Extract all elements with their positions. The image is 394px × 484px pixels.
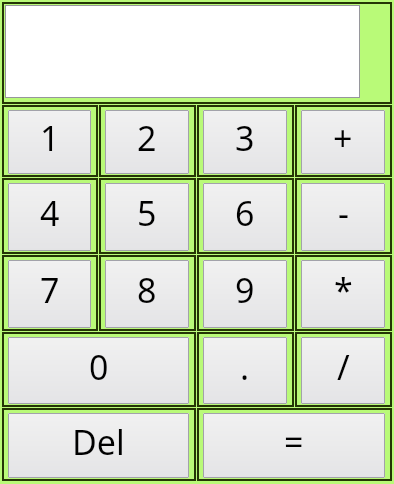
staticText: Del: [72, 419, 125, 465]
button[interactable]: /: [301, 337, 385, 404]
staticText: 9: [235, 267, 255, 313]
staticText: 7: [40, 267, 60, 313]
button[interactable]: 4: [8, 183, 91, 251]
staticText: 1: [40, 115, 60, 161]
staticText: 4: [40, 190, 60, 236]
staticText: 6: [235, 190, 255, 236]
button[interactable]: 7: [8, 260, 91, 328]
button[interactable]: +: [301, 110, 385, 174]
staticText: 2: [137, 115, 157, 161]
staticText: 3: [235, 115, 255, 161]
button[interactable]: 9: [203, 260, 287, 328]
button[interactable]: .: [203, 337, 287, 404]
button[interactable]: 5: [105, 183, 189, 251]
button[interactable]: 3: [203, 110, 287, 174]
button[interactable]: 2: [105, 110, 189, 174]
button[interactable]: 6: [203, 183, 287, 251]
staticText: =: [284, 419, 304, 465]
staticText: +: [333, 115, 353, 161]
button[interactable]: =: [203, 413, 385, 478]
button[interactable]: 8: [105, 260, 189, 328]
button[interactable]: -: [301, 183, 385, 251]
staticText: .: [240, 344, 250, 390]
button[interactable]: *: [301, 260, 385, 328]
button[interactable]: 0: [8, 337, 189, 404]
staticText: *: [334, 267, 353, 313]
button[interactable]: Del: [8, 413, 189, 478]
staticText: -: [338, 190, 349, 236]
button[interactable]: [5, 5, 360, 98]
staticText: 8: [137, 267, 157, 313]
button[interactable]: 1: [8, 110, 91, 174]
staticText: 0: [89, 344, 109, 390]
staticText: /: [337, 344, 350, 390]
staticText: 5: [137, 190, 157, 236]
